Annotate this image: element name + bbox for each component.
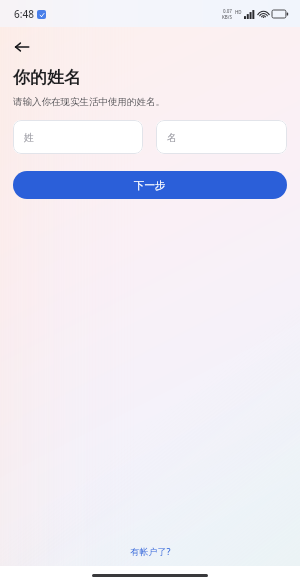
staticText: 你的姓名 [13, 67, 81, 88]
button[interactable]: 有帐户了? [120, 541, 181, 561]
staticText: KB/S [222, 14, 232, 20]
staticText: 6:48 [14, 7, 34, 21]
staticText: 名 [167, 131, 177, 144]
staticText: HD [235, 9, 242, 15]
staticText: 下一步 [134, 179, 166, 192]
button[interactable]: Back [6, 31, 38, 63]
button[interactable]: 下一步 [13, 171, 287, 199]
button[interactable]: 姓 [13, 120, 143, 154]
staticText: 有帐户了? [130, 545, 171, 557]
staticText: 姓 [24, 131, 34, 144]
button[interactable]: 名 [156, 120, 287, 154]
staticText: 0.07 [223, 8, 232, 14]
staticText: 请输入你在现实生活中使用的姓名。 [13, 96, 165, 108]
